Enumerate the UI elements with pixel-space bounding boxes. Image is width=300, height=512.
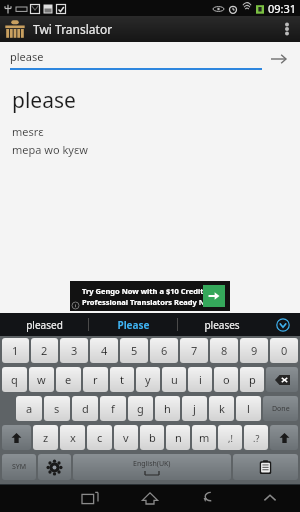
button[interactable]: k xyxy=(209,396,234,421)
button[interactable]: 1 xyxy=(2,338,29,363)
button[interactable]: Keyboard settings xyxy=(38,454,71,480)
staticText: x xyxy=(70,430,76,445)
button[interactable]: Done xyxy=(263,396,298,421)
staticText: z xyxy=(43,430,49,445)
staticText: e xyxy=(65,372,72,387)
staticText: SYM xyxy=(12,462,27,472)
button[interactable]: d xyxy=(72,396,98,421)
button[interactable]: h xyxy=(155,396,180,421)
button[interactable]: p xyxy=(240,367,264,392)
staticText: r xyxy=(93,372,98,387)
button[interactable]: Shift xyxy=(270,425,298,450)
staticText: m xyxy=(199,430,210,445)
button[interactable]: pleased xyxy=(0,313,88,336)
button[interactable]: c xyxy=(87,425,112,450)
staticText: 7 xyxy=(191,343,198,358)
staticText: ,! xyxy=(228,432,233,444)
staticText: pleased xyxy=(26,318,63,332)
button[interactable]: Shift xyxy=(2,425,31,450)
staticText: 6 xyxy=(161,343,168,358)
button[interactable]: 6 xyxy=(150,338,178,363)
button[interactable]: a xyxy=(16,396,42,421)
staticText: n xyxy=(175,430,182,445)
staticText: k xyxy=(219,401,225,416)
staticText: c xyxy=(97,430,103,445)
button[interactable]: Try Gengo Now with a $10 Credit xyxy=(70,281,230,311)
button[interactable]: 9 xyxy=(240,338,268,363)
staticText: l xyxy=(247,401,250,416)
button[interactable]: s xyxy=(44,396,70,421)
button[interactable]: More options xyxy=(274,16,300,42)
button[interactable]: q xyxy=(2,367,27,392)
staticText: .? xyxy=(253,432,260,444)
staticText: 0 xyxy=(281,343,288,358)
button[interactable]: Recents xyxy=(60,484,120,512)
staticText: a xyxy=(26,401,33,416)
button[interactable]: 0 xyxy=(270,338,298,363)
staticText: mepa wo kyɛw xyxy=(12,142,88,157)
staticText: u xyxy=(171,372,178,387)
button[interactable]: English(UK) xyxy=(73,454,231,480)
button[interactable]: 4 xyxy=(90,338,118,363)
button[interactable]: ,! xyxy=(218,425,242,450)
button[interactable]: b xyxy=(140,425,164,450)
staticText: d xyxy=(82,401,89,416)
staticText: Twi Translator xyxy=(33,21,113,37)
staticText: y xyxy=(145,372,151,387)
button[interactable]: 8 xyxy=(210,338,238,363)
button[interactable]: n xyxy=(166,425,190,450)
staticText: j xyxy=(193,401,196,416)
button[interactable]: j xyxy=(182,396,207,421)
staticText: s xyxy=(54,401,60,416)
button[interactable]: e xyxy=(56,367,81,392)
staticText: 1 xyxy=(12,343,19,358)
button[interactable]: .? xyxy=(244,425,268,450)
button[interactable]: y xyxy=(136,367,160,392)
button[interactable]: Expand suggestions xyxy=(266,313,300,336)
button[interactable]: m xyxy=(192,425,216,450)
staticText: Please xyxy=(117,318,150,332)
button[interactable]: t xyxy=(110,367,134,392)
button[interactable]: Hide keyboard xyxy=(240,484,300,512)
button[interactable]: v xyxy=(114,425,138,450)
button[interactable]: pleases xyxy=(178,313,266,336)
button[interactable]: i xyxy=(188,367,212,392)
button[interactable]: f xyxy=(100,396,126,421)
button[interactable]: 2 xyxy=(31,338,58,363)
button[interactable]: Clipboard xyxy=(233,454,298,480)
button[interactable]: 7 xyxy=(180,338,208,363)
staticText: v xyxy=(123,430,129,445)
button[interactable]: Backspace xyxy=(266,367,298,392)
button[interactable]: please xyxy=(10,49,262,70)
button[interactable]: r xyxy=(83,367,108,392)
staticText: 9 xyxy=(251,343,258,358)
staticText: please xyxy=(10,49,44,64)
staticText: i xyxy=(199,372,202,387)
button[interactable]: o xyxy=(214,367,238,392)
staticText: 4 xyxy=(101,343,108,358)
staticText: Done xyxy=(272,404,290,414)
button[interactable]: Translate xyxy=(262,42,296,76)
button[interactable]: Please xyxy=(89,313,177,336)
button[interactable]: SYM xyxy=(2,454,36,480)
staticText: please xyxy=(12,86,76,115)
staticText: p xyxy=(249,372,256,387)
button[interactable]: 3 xyxy=(60,338,88,363)
staticText: pleases xyxy=(204,318,240,332)
button[interactable]: l xyxy=(236,396,261,421)
staticText: 5 xyxy=(131,343,138,358)
button[interactable]: w xyxy=(29,367,54,392)
button[interactable]: 5 xyxy=(120,338,148,363)
button[interactable]: z xyxy=(33,425,58,450)
staticText: g xyxy=(137,401,144,416)
staticText: t xyxy=(120,372,124,387)
staticText: h xyxy=(164,401,171,416)
button[interactable]: g xyxy=(128,396,153,421)
button[interactable]: Back xyxy=(180,484,240,512)
button[interactable]: Home xyxy=(120,484,180,512)
staticText: o xyxy=(223,372,230,387)
button[interactable]: x xyxy=(60,425,85,450)
button[interactable]: u xyxy=(162,367,186,392)
staticText: Professional Translators Ready Now! xyxy=(82,297,218,307)
staticText: 2 xyxy=(41,343,48,358)
